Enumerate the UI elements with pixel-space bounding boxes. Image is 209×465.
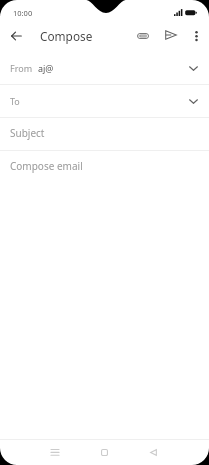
button[interactable]: Send [159,23,183,47]
button[interactable]: Compose email [0,151,209,184]
button[interactable]: From [0,52,209,84]
button[interactable]: Recent apps [43,440,67,464]
button[interactable]: Back [141,440,165,464]
button[interactable]: To [0,85,209,117]
button[interactable]: More options [184,24,208,48]
staticText: Subject [10,126,45,140]
staticText: Compose email [10,159,83,173]
staticText: 10:00 [13,8,33,18]
button[interactable]: Back [4,24,28,48]
staticText: aj@ [38,62,54,74]
button[interactable]: Subject [0,118,209,150]
staticText: Compose [40,28,93,44]
staticText: To [10,95,20,107]
staticText: From [10,62,33,74]
button[interactable]: Home [92,440,116,464]
button[interactable]: Attach file [131,24,155,48]
